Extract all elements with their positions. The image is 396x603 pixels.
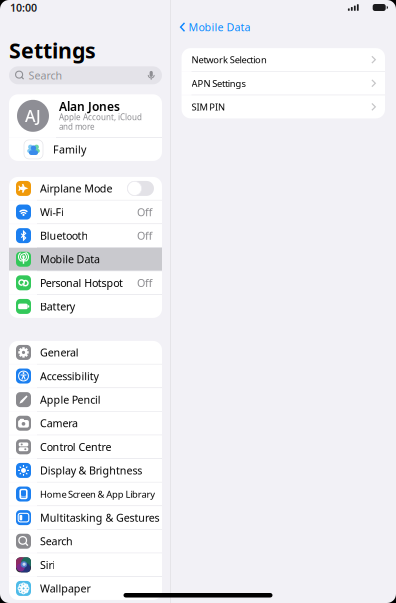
staticText: Network Selection (192, 53, 267, 66)
staticText: SIM PIN (192, 101, 225, 113)
button[interactable]: Family (9, 138, 162, 161)
staticText: Search (29, 68, 63, 82)
button[interactable]: Siri (9, 553, 162, 576)
staticText: Mobile Data (189, 20, 251, 34)
staticText: APN Settings (192, 77, 245, 89)
button[interactable]: General (9, 341, 162, 364)
staticText: Off (137, 228, 152, 243)
button[interactable]: AJ (9, 94, 162, 137)
staticText: Airplane Mode (40, 181, 113, 195)
button[interactable]: Multitasking & Gestures (9, 506, 162, 529)
button[interactable]: Mobile Data (171, 16, 257, 38)
button[interactable]: Network Selection (182, 48, 385, 71)
staticText: Battery (40, 299, 75, 313)
button[interactable]: Wallpaper (9, 577, 162, 600)
button[interactable]: Battery (9, 295, 162, 318)
button[interactable]: Mobile Data (9, 248, 162, 271)
button[interactable]: Home Screen & App Library (9, 482, 162, 505)
staticText: Accessibility (40, 369, 99, 383)
staticText: Display & Brightness (40, 463, 142, 477)
button[interactable]: Accessibility (9, 364, 162, 387)
staticText: General (40, 345, 79, 359)
staticText: Mobile Data (40, 252, 100, 266)
staticText: Siri (40, 558, 55, 572)
staticText: Off (137, 276, 152, 290)
staticText: Control Centre (40, 440, 111, 454)
staticText: Wi-Fi (40, 205, 64, 219)
button[interactable]: APN Settings (182, 72, 385, 95)
staticText: Settings (9, 36, 96, 64)
staticText: Wallpaper (40, 581, 90, 595)
button[interactable]: Apple Pencil (9, 388, 162, 411)
staticText: Alan Jones (59, 98, 120, 114)
staticText: and more (59, 121, 95, 132)
button[interactable]: Airplane Mode (9, 177, 162, 200)
staticText: Off (137, 205, 152, 219)
staticText: Bluetooth (40, 228, 88, 243)
staticText: Personal Hotspot (40, 276, 123, 290)
staticText: Multitasking & Gestures (40, 510, 160, 525)
button[interactable]: Camera (9, 412, 162, 435)
staticText: Camera (40, 416, 78, 430)
staticText: Search (40, 534, 73, 548)
staticText: Apple Account, iCloud (59, 112, 142, 122)
button[interactable]: Bluetooth (9, 224, 162, 247)
button[interactable]: SIM PIN (182, 95, 385, 118)
button[interactable]: Wi-Fi (9, 200, 162, 223)
button[interactable]: Search (9, 530, 162, 553)
staticText: Home Screen & App Library (40, 488, 155, 500)
staticText: Apple Pencil (40, 392, 101, 407)
staticText: AJ (25, 105, 41, 126)
staticText: Family (53, 142, 86, 156)
button[interactable]: Display & Brightness (9, 459, 162, 482)
button[interactable]: Control Centre (9, 435, 162, 458)
staticText: 10:00 (10, 0, 37, 15)
button[interactable]: Personal Hotspot (9, 271, 162, 294)
